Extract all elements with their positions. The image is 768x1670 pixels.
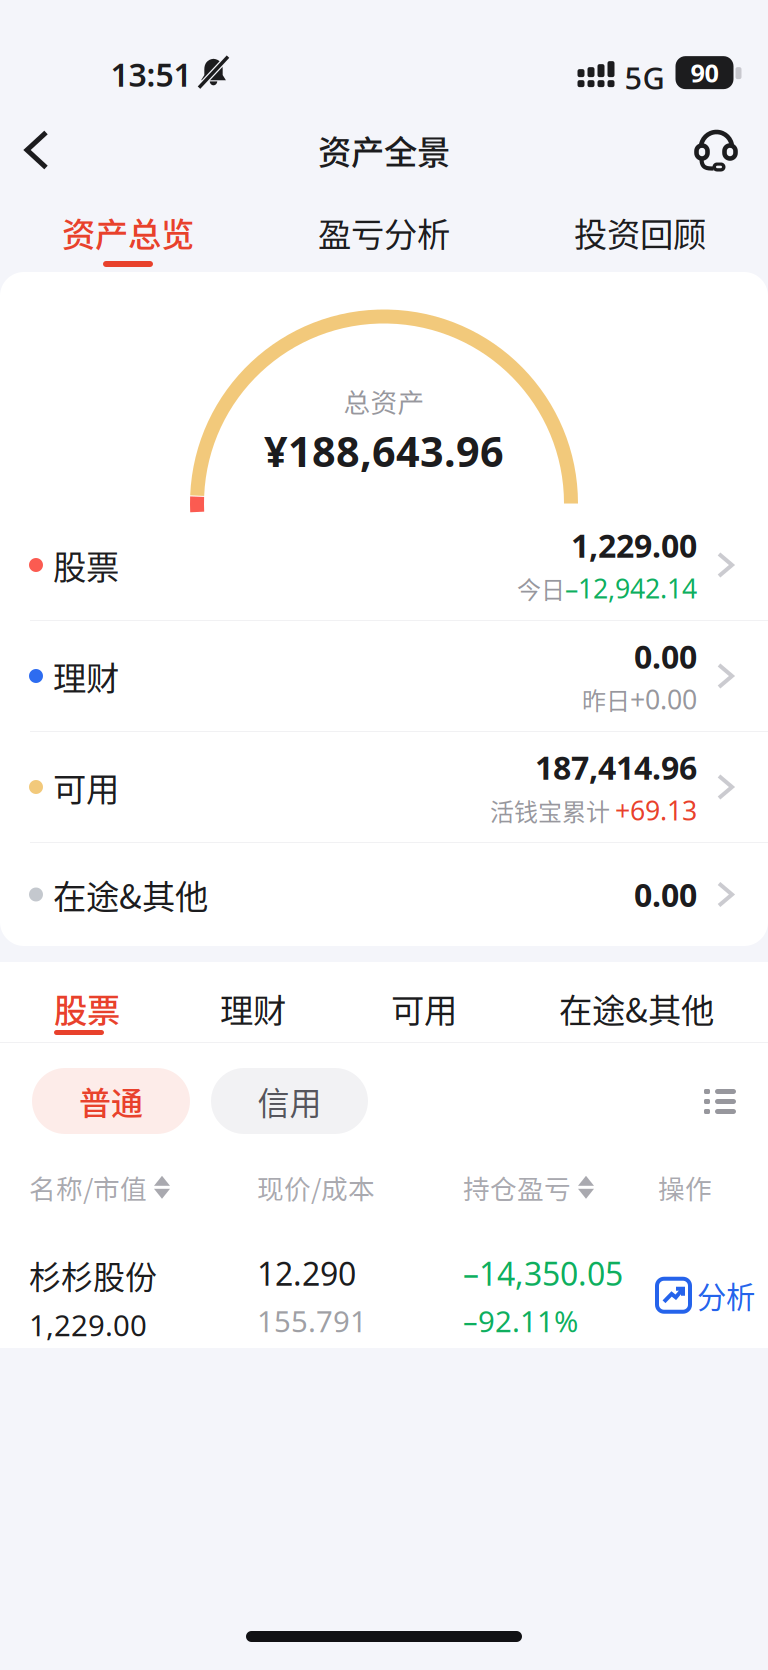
staticText: 现价/成本 bbox=[257, 1168, 375, 1207]
staticText: 1,229.00 bbox=[29, 1305, 147, 1344]
staticText: 0.00 bbox=[634, 873, 697, 916]
button[interactable]: 投资回顾 bbox=[512, 190, 768, 272]
staticText: –92.11% bbox=[463, 1301, 578, 1340]
button[interactable]: 理财 bbox=[0, 962, 284, 1043]
button[interactable]: 列表视图 bbox=[704, 1089, 736, 1114]
staticText: 股票 bbox=[53, 541, 119, 589]
button[interactable]: 客服 bbox=[671, 110, 768, 190]
button[interactable]: 股票 bbox=[0, 510, 768, 621]
button[interactable]: 股票 bbox=[0, 962, 118, 1043]
staticText: –14,350.05 bbox=[463, 1252, 623, 1294]
staticText: 持仓盈亏 bbox=[463, 1168, 571, 1207]
staticText: +69.13 bbox=[615, 792, 697, 828]
staticText: 5G bbox=[624, 57, 664, 98]
staticText: 在途&其他 bbox=[53, 870, 208, 919]
staticText: 资产总览 bbox=[62, 208, 194, 256]
staticText: 普通 bbox=[79, 1078, 143, 1124]
staticText: 操作 bbox=[658, 1168, 712, 1207]
staticText: 今日 bbox=[517, 571, 565, 606]
staticText: ¥188,643.96 bbox=[264, 423, 504, 478]
button[interactable]: 普通 bbox=[32, 1068, 190, 1134]
staticText: 在途&其他 bbox=[559, 984, 714, 1032]
staticText: 1,229.00 bbox=[571, 524, 697, 566]
staticText: 12.290 bbox=[257, 1252, 356, 1294]
staticText: 投资回顾 bbox=[574, 208, 706, 256]
staticText: 股票 bbox=[54, 984, 120, 1032]
staticText: 昨日 bbox=[582, 682, 630, 717]
staticText: 信用 bbox=[257, 1078, 321, 1124]
button[interactable]: 可用 bbox=[0, 732, 768, 843]
staticText: 可用 bbox=[53, 763, 119, 811]
staticText: 13:51 bbox=[110, 53, 191, 96]
staticText: 名称/市值 bbox=[29, 1168, 147, 1207]
button[interactable]: 资产总览 bbox=[0, 190, 256, 272]
button[interactable]: 可用 bbox=[0, 962, 455, 1043]
staticText: +0.00 bbox=[630, 681, 697, 717]
staticText: 理财 bbox=[220, 984, 286, 1032]
button[interactable]: 杉杉股份 bbox=[0, 1240, 768, 1348]
staticText: –12,942.14 bbox=[565, 570, 697, 606]
staticText: 盈亏分析 bbox=[318, 208, 450, 256]
staticText: 资产全景 bbox=[318, 126, 450, 174]
staticText: 90 bbox=[690, 56, 718, 89]
button[interactable]: 盈亏分析 bbox=[256, 190, 512, 272]
button[interactable]: 信用 bbox=[211, 1068, 368, 1134]
staticText: 活钱宝累计 bbox=[490, 793, 615, 828]
staticText: 155.791 bbox=[257, 1301, 367, 1340]
staticText: 分析 bbox=[697, 1274, 755, 1316]
button[interactable]: 返回 bbox=[0, 110, 73, 189]
staticText: 0.00 bbox=[634, 635, 697, 677]
button[interactable]: 在途&其他 bbox=[0, 962, 711, 1043]
staticText: 187,414.96 bbox=[535, 746, 697, 788]
staticText: 可用 bbox=[391, 984, 457, 1032]
button[interactable]: 理财 bbox=[0, 621, 768, 732]
staticText: 杉杉股份 bbox=[29, 1252, 157, 1298]
staticText: 总资产 bbox=[343, 381, 424, 420]
button[interactable]: 在途&其他 bbox=[0, 843, 768, 946]
staticText: 理财 bbox=[53, 652, 119, 700]
